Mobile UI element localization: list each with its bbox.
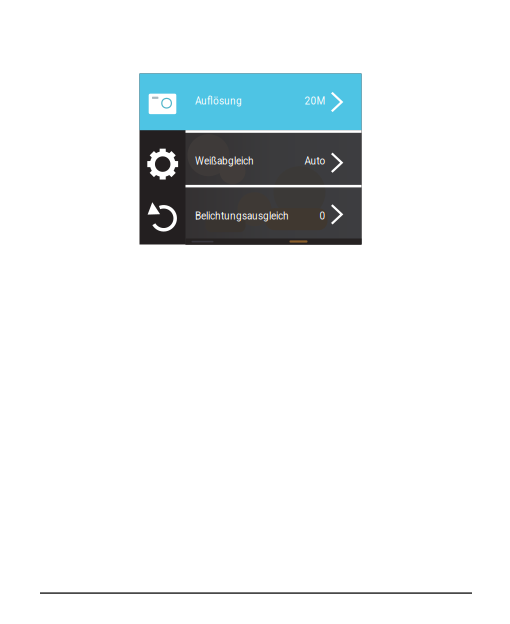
staticText: 20M bbox=[304, 95, 325, 107]
staticText: 0 bbox=[319, 210, 325, 222]
staticText: Belichtungsausgleich bbox=[195, 210, 289, 222]
staticText: Auto bbox=[304, 155, 325, 167]
staticText: Weißabgleich bbox=[195, 155, 254, 167]
button[interactable]: Auflösung bbox=[139, 73, 361, 130]
staticText: Auflösung bbox=[195, 95, 242, 107]
button[interactable]: Weißabgleich bbox=[139, 133, 361, 185]
button[interactable]: Belichtungsausgleich bbox=[139, 187, 361, 244]
